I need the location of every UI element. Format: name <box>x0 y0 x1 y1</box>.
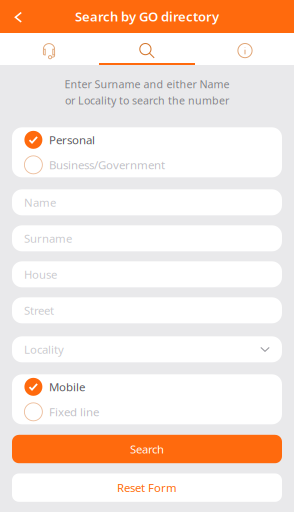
button[interactable]: House <box>12 261 282 287</box>
button[interactable]: Fixed line <box>12 399 282 424</box>
staticText: Fixed line <box>49 404 99 419</box>
button[interactable]: Personal <box>12 127 282 152</box>
button[interactable]: Name <box>12 189 282 215</box>
staticText: Surname <box>24 231 72 246</box>
staticText: Personal <box>49 132 95 147</box>
staticText: Business/Government <box>49 157 165 172</box>
staticText: Enter Surname and either Name <box>64 77 229 91</box>
button[interactable]: Mobile <box>12 374 282 399</box>
button[interactable]: Search <box>98 33 196 65</box>
button[interactable]: Back <box>0 0 37 33</box>
button[interactable]: Call support <box>0 33 98 65</box>
staticText: Reset Form <box>117 480 177 495</box>
staticText: Mobile <box>49 379 85 394</box>
staticText: Street <box>24 303 54 318</box>
button[interactable]: Street <box>12 297 282 323</box>
button[interactable]: Search <box>12 435 282 463</box>
staticText: or Locality to search the number <box>65 93 229 107</box>
staticText: Search by GO directory <box>75 8 219 25</box>
staticText: Search <box>130 441 164 456</box>
staticText: Locality <box>24 342 64 357</box>
staticText: House <box>24 267 57 282</box>
button[interactable]: Reset Form <box>12 473 282 502</box>
button[interactable]: Surname <box>12 225 282 251</box>
button[interactable]: Business/Government <box>12 152 282 177</box>
staticText: Name <box>24 195 56 210</box>
button[interactable]: Information <box>196 33 294 65</box>
button[interactable]: Locality <box>12 336 282 362</box>
